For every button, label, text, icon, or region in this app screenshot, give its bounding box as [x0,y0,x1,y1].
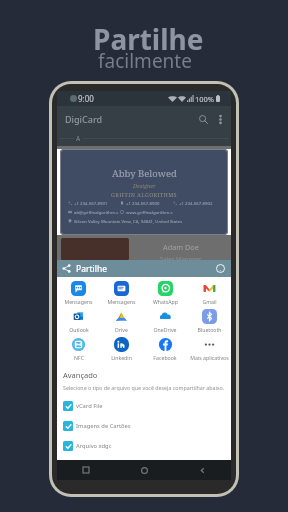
staticText: Mais aplicativos [190,354,229,361]
staticText: +1 234-567-8902 [179,200,213,206]
staticText: +1 234-567-8900 [126,200,160,206]
button[interactable]: Outlook [57,306,100,334]
button[interactable]: Help [214,262,227,275]
button[interactable]: WhatsApp [143,278,187,306]
button[interactable]: Abby Belowed [60,149,228,235]
staticText: Sales Manager [160,255,202,263]
staticText: DigiCard [65,113,103,125]
staticText: Linkedin [111,354,132,361]
button[interactable]: Arquivo xdgc [57,436,231,456]
staticText: Outlook [69,326,89,333]
staticText: +1 234-567-8901 [74,200,108,206]
staticText: WhatsApp [153,298,178,305]
staticText: vCard File [76,402,103,410]
button[interactable]: More options [212,111,228,127]
button[interactable]: Bluetooth [187,306,231,334]
staticText: 9:00 [78,93,94,104]
staticText: www.griffinalgorithm.com [126,209,173,215]
button[interactable]: Back [173,460,231,480]
staticText: NFC [74,354,84,361]
staticText: Partilhe [93,20,204,58]
staticText: Arquivo xdgc [76,442,112,450]
staticText: 100% [195,94,215,104]
button[interactable]: NFC [57,334,100,362]
staticText: GRIFFIN ALGORITHMS [111,191,177,198]
staticText: Designer [133,182,156,189]
button[interactable]: Home [115,460,173,480]
staticText: Facebook [153,354,177,361]
staticText: Gmail [202,298,217,305]
staticText: Silicon Valley Mountain View, CA, 94841,… [74,218,183,224]
button[interactable]: Linkedin [100,334,143,362]
staticText: Imagens de Cartões [76,422,131,430]
staticText: Mensagens [107,298,136,305]
staticText: Mensagens [64,298,93,305]
button[interactable]: Mensagens [57,278,100,306]
staticText: facilmente [98,48,192,74]
staticText: ab@griffinalgorithm.com [74,209,120,215]
button[interactable]: Mais aplicativos [187,334,231,362]
button[interactable]: Drive [100,306,143,334]
staticText: OneDrive [153,326,177,333]
staticText: Adam Doe [163,242,199,252]
button[interactable]: Facebook [143,334,187,362]
button[interactable]: Adam Doe [57,235,231,260]
staticText: Abby Belowed [112,167,177,180]
button[interactable]: vCard File [57,396,231,416]
staticText: Avançado [63,370,98,380]
button[interactable]: Mensagens [100,278,143,306]
button[interactable]: Search [194,110,212,128]
button[interactable]: Imagens de Cartões [57,416,231,436]
staticText: Partilhe [76,263,107,275]
staticText: A [76,134,81,143]
staticText: Selecione o tipo de arquivo que você des… [63,384,225,391]
button[interactable]: Gmail [187,278,231,306]
button[interactable]: OneDrive [143,306,187,334]
button[interactable]: Recents [57,460,115,480]
staticText: Bluetooth [197,326,222,333]
staticText: Drive [115,326,128,333]
